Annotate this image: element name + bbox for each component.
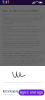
staticText: incorporated herein by reference. Each S… [2,31,42,34]
button[interactable]: Agree and sign [18,89,44,95]
staticText: tort or otherwise, even if advised of th… [2,81,37,83]
staticText: Tap to redraw [2,93,12,95]
staticText: signature affixed hereto by a duly autho… [2,21,33,24]
staticText: exclusive property of the Company upon f… [2,71,43,73]
staticText: Agree and sign [20,91,43,94]
staticText: thirty (30) days written notice delivere… [2,63,37,65]
staticText: Alex Rivera [2,90,18,93]
staticText: signature page below and is effective as… [2,19,40,21]
button[interactable]: Signature field [3,66,42,83]
staticText: not disclose it to any third party witho… [2,54,39,56]
staticText: applicable Statement of Work within thir… [2,43,39,44]
staticText: MASTER SERVICES AGREEMENT [2,9,40,12]
staticText: Effective Date and continues until termi… [2,61,42,63]
staticText: identify the deliverables, milestones, f… [2,34,39,38]
staticText: This Master Services Agreement (the “Agr… [2,13,43,17]
staticText: 6. LIMITATION OF LIABILITY. In no event … [2,75,38,77]
staticText: and Contractor hereby assigns all right,… [2,73,43,75]
staticText: withholdings and contributions arising f… [2,46,34,50]
staticText: all Confidential Information disclosed b… [2,53,43,54]
staticText: 9:41 [3,1,10,4]
staticText: liable for indirect, incidental, special… [2,77,42,79]
